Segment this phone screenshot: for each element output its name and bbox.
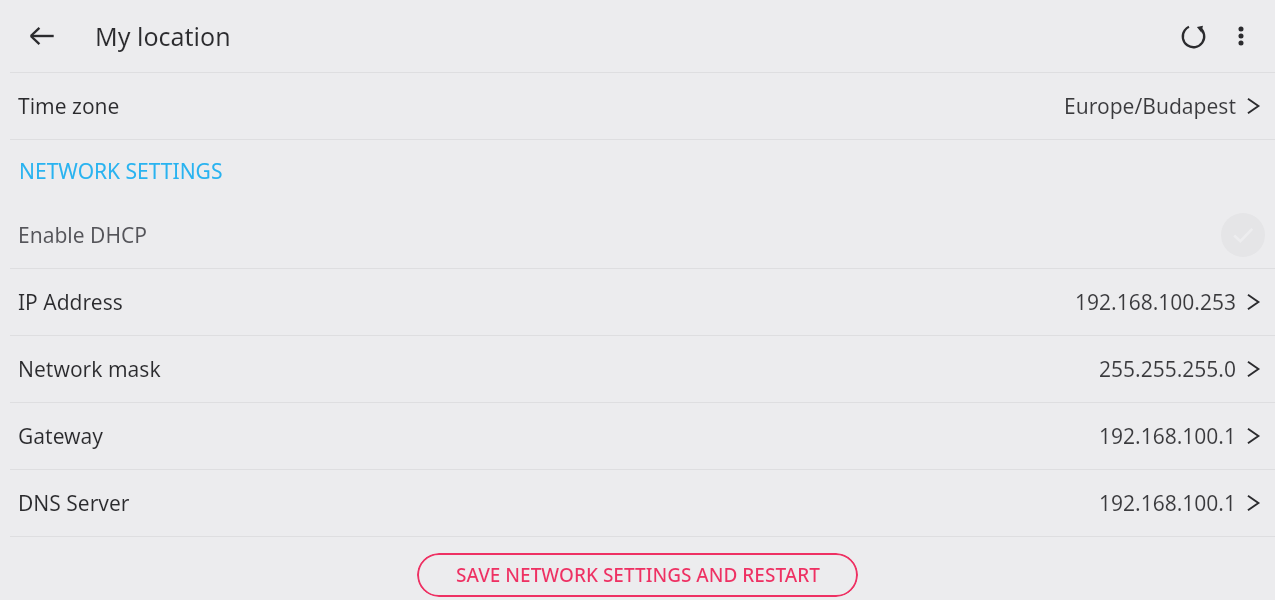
- button[interactable]: SAVE NETWORK SETTINGS AND RESTART: [417, 553, 858, 597]
- button[interactable]: Gateway: [0, 403, 1275, 469]
- staticText: Europe/Budapest: [1064, 92, 1236, 121]
- staticText: Time zone: [18, 92, 120, 121]
- staticText: Gateway: [18, 422, 104, 451]
- button[interactable]: DNS Server: [0, 470, 1275, 536]
- button[interactable]: Time zone: [0, 73, 1275, 139]
- staticText: DNS Server: [18, 489, 130, 518]
- staticText: My location: [95, 19, 231, 53]
- button[interactable]: Enable DHCP: [0, 202, 1275, 268]
- button[interactable]: Network mask: [0, 336, 1275, 402]
- staticText: 255.255.255.0: [1098, 355, 1236, 384]
- staticText: IP Address: [18, 288, 123, 317]
- button[interactable]: More options: [1217, 12, 1265, 60]
- button[interactable]: Back: [20, 14, 64, 58]
- button[interactable]: Refresh: [1169, 12, 1217, 60]
- button[interactable]: IP Address: [0, 269, 1275, 335]
- staticText: Network mask: [18, 355, 161, 384]
- staticText: 192.168.100.1: [1098, 422, 1236, 451]
- staticText: Enable DHCP: [18, 221, 147, 250]
- staticText: 192.168.100.253: [1074, 288, 1236, 317]
- staticText: NETWORK SETTINGS: [19, 157, 223, 186]
- staticText: 192.168.100.1: [1098, 489, 1236, 518]
- staticText: SAVE NETWORK SETTINGS AND RESTART: [456, 562, 820, 588]
